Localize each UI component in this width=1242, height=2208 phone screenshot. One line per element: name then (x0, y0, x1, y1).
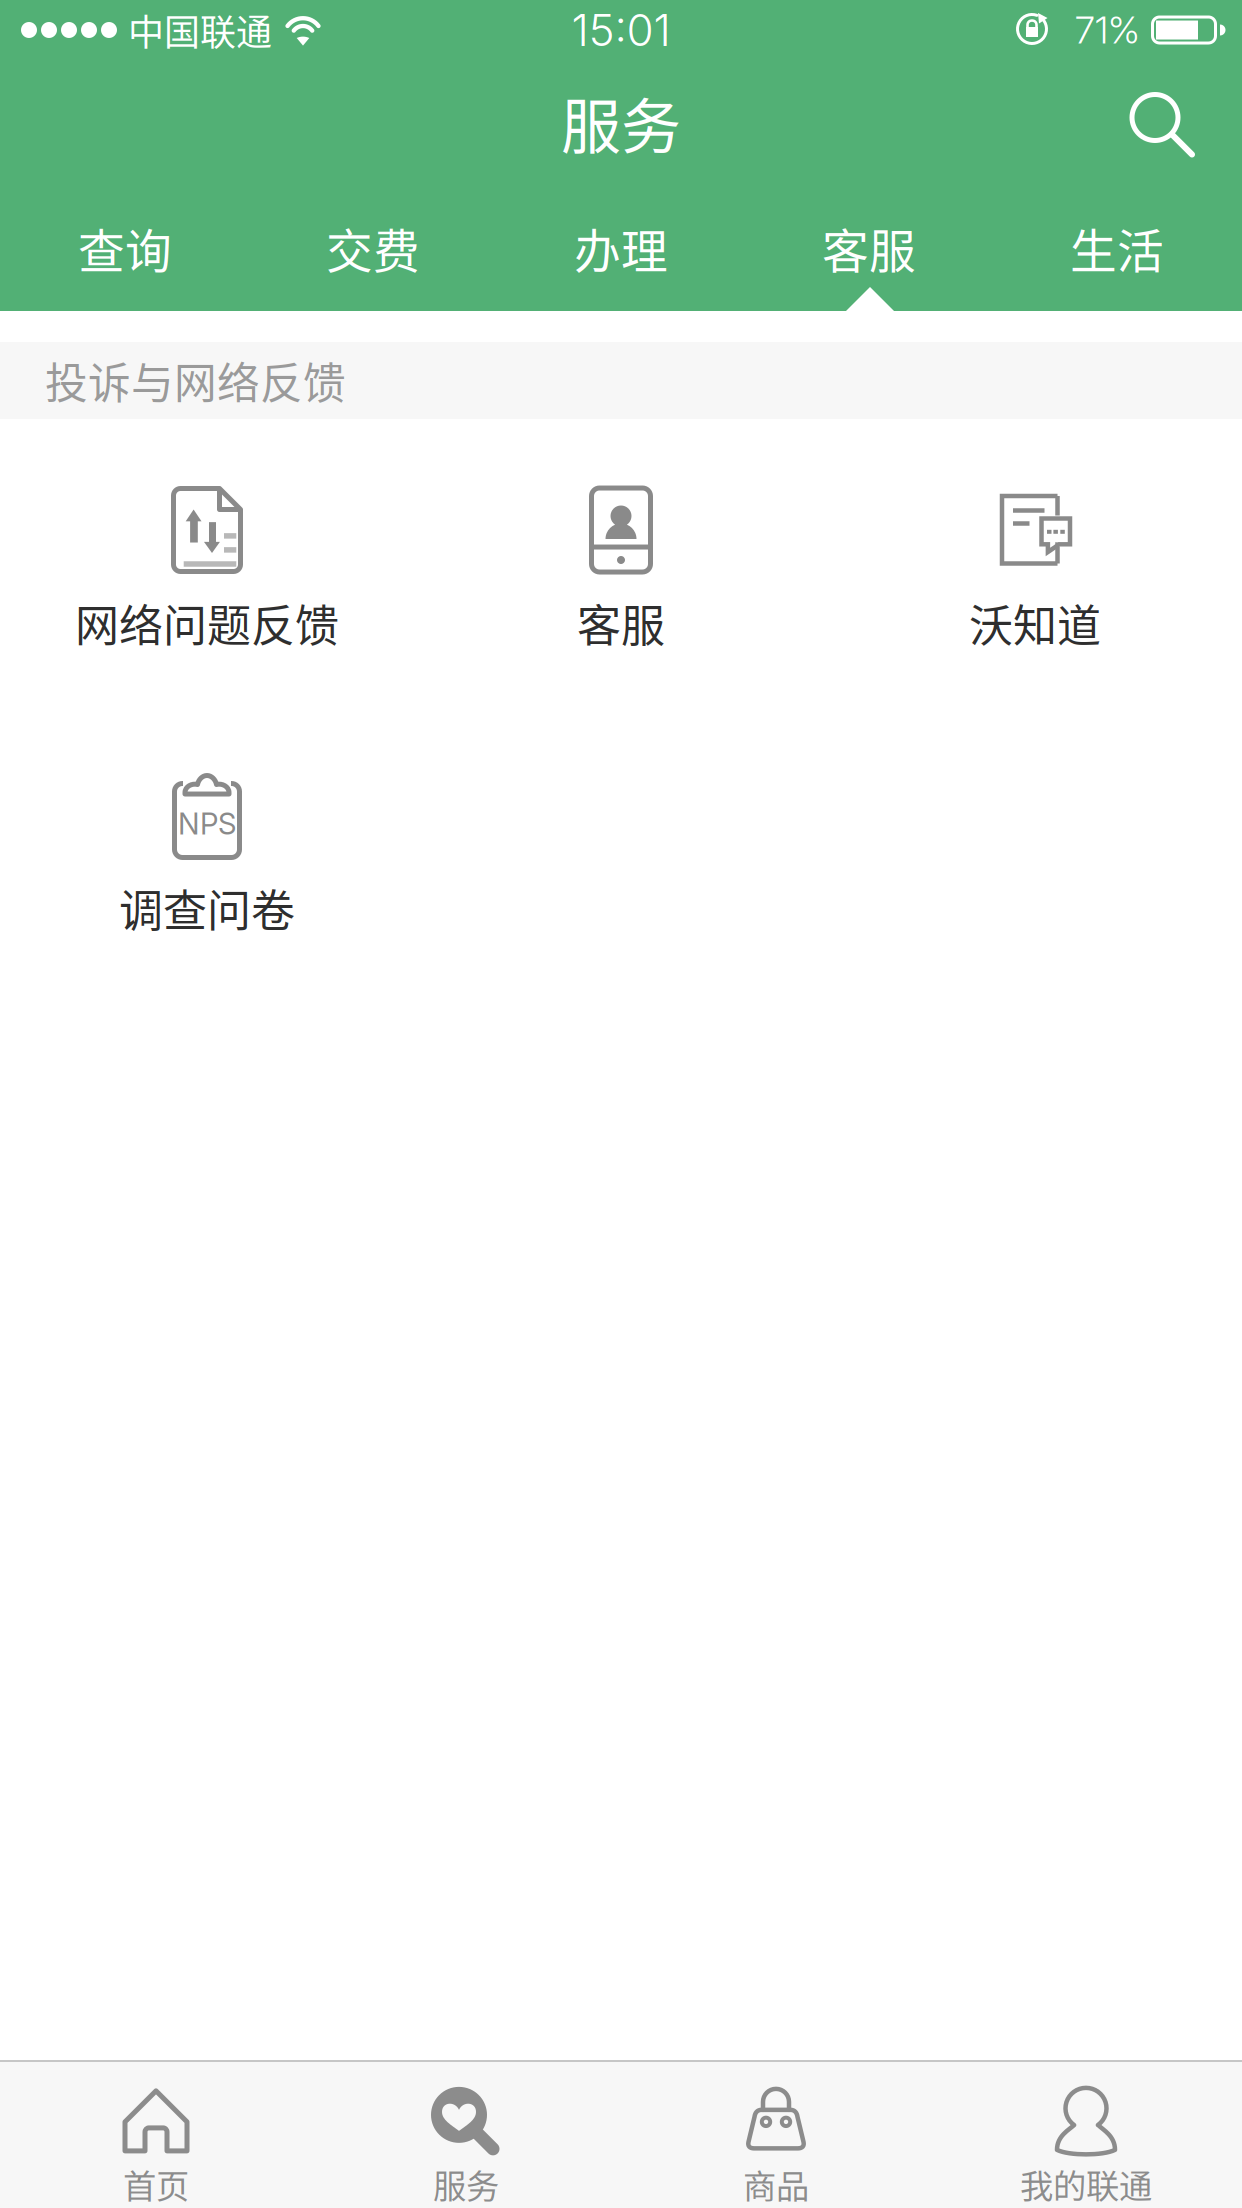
staticText: 查询 (78, 214, 172, 282)
staticText: 客服 (577, 591, 665, 655)
button[interactable]: Search (1128, 91, 1242, 163)
staticText: 15:01 (571, 3, 670, 57)
button[interactable]: 生活 (993, 195, 1241, 311)
staticText: 办理 (574, 214, 668, 282)
staticText: 生活 (1070, 214, 1164, 282)
staticText: 客服 (822, 214, 916, 282)
staticText: 服务 (433, 2160, 499, 2208)
button[interactable]: 客服 (414, 485, 828, 770)
staticText: 中国联通 (128, 4, 272, 56)
staticText: NPS (178, 806, 236, 841)
button[interactable]: 服务 (311, 2061, 621, 2208)
button[interactable]: 网络问题反馈 (0, 485, 414, 770)
button[interactable]: 沃知道 (828, 485, 1242, 770)
staticText: 投诉与网络反馈 (45, 350, 346, 411)
staticText: 商品 (743, 2160, 809, 2208)
button[interactable]: 查询 (1, 195, 249, 311)
staticText: 首页 (123, 2160, 189, 2208)
staticText: 交费 (326, 214, 420, 282)
button[interactable]: 首页 (1, 2061, 311, 2208)
staticText: 沃知道 (969, 591, 1101, 655)
staticText: 网络问题反馈 (75, 591, 339, 655)
staticText: 我的联通 (1020, 2160, 1152, 2208)
button[interactable]: 交费 (249, 195, 497, 311)
staticText: 调查问卷 (119, 876, 295, 940)
button[interactable]: 商品 (621, 2061, 931, 2208)
button[interactable]: NPS (0, 770, 414, 1055)
button[interactable]: 办理 (497, 195, 745, 311)
staticText: 71% (1075, 7, 1140, 53)
staticText: 服务 (561, 79, 681, 166)
button[interactable]: 我的联通 (931, 2061, 1241, 2208)
button[interactable]: 客服 (745, 195, 993, 311)
